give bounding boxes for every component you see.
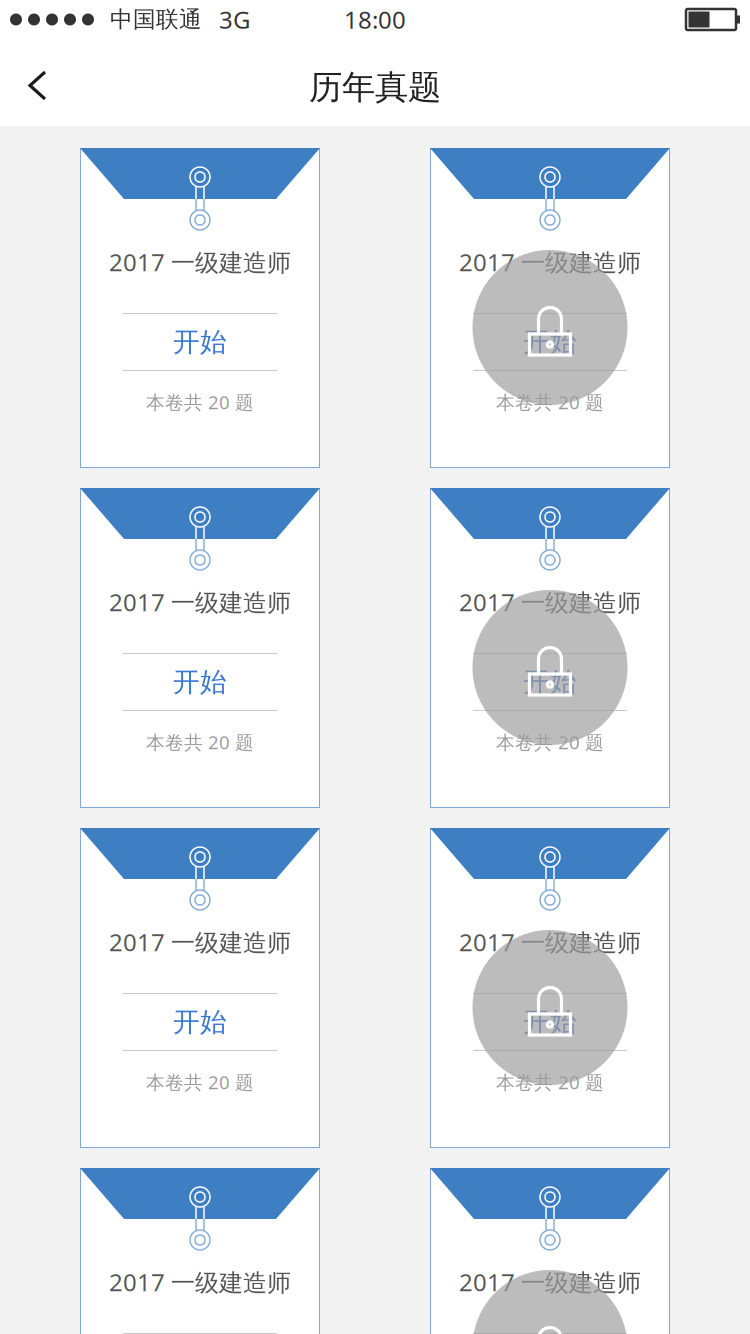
staticText: 开始 [523,1006,577,1038]
staticText: 本卷共 20 题 [496,730,604,754]
staticText: 本卷共 20 题 [146,390,254,414]
button[interactable]: Back [0,46,71,119]
staticText: 2017 一级建造师 [459,1266,641,1298]
staticText: 开始 [523,326,577,358]
staticText: 3G [219,4,250,35]
staticText: 2017 一级建造师 [109,586,291,618]
button[interactable]: 2017 一级建造师 [80,828,320,1148]
button[interactable]: 2017 一级建造师 [80,148,320,468]
staticText: 本卷共 20 题 [496,390,604,414]
staticText: 开始 [173,1006,227,1038]
staticText: 2017 一级建造师 [459,586,641,618]
button[interactable]: 2017 一级建造师 [430,488,670,808]
button[interactable]: 2017 一级建造师 [430,1168,670,1334]
staticText: 中国联通 [110,6,202,33]
staticText: 本卷共 20 题 [146,1070,254,1094]
staticText: 本卷共 20 题 [496,1070,604,1094]
staticText: 本卷共 20 题 [146,730,254,754]
staticText: 历年真题 [309,67,441,108]
staticText: 18:00 [344,4,406,35]
button[interactable]: 2017 一级建造师 [80,488,320,808]
staticText: 开始 [173,326,227,358]
staticText: 2017 一级建造师 [459,246,641,278]
button[interactable]: 2017 一级建造师 [430,148,670,468]
staticText: 2017 一级建造师 [459,926,641,958]
staticText: 开始 [523,666,577,698]
button[interactable]: 2017 一级建造师 [430,828,670,1148]
staticText: 2017 一级建造师 [109,926,291,958]
staticText: 开始 [173,666,227,698]
staticText: 2017 一级建造师 [109,1266,291,1298]
staticText: 2017 一级建造师 [109,246,291,278]
button[interactable]: 2017 一级建造师 [80,1168,320,1334]
